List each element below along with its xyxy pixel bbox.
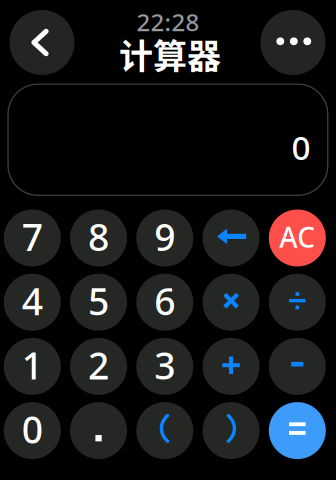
button[interactable]: Equals — [269, 402, 326, 459]
button[interactable]: Divide — [269, 274, 326, 331]
staticText: 5 — [88, 276, 109, 325]
button[interactable]: 9 — [136, 209, 193, 266]
button[interactable]: Right parenthesis — [203, 402, 260, 459]
button[interactable]: Back — [9, 10, 74, 75]
staticText: 2 — [88, 340, 109, 390]
staticText: 6 — [154, 276, 175, 325]
staticText: 22:28 — [136, 6, 199, 38]
staticText: 8 — [88, 212, 109, 261]
button[interactable]: 4 — [4, 274, 61, 331]
staticText: 0 — [22, 404, 43, 454]
button[interactable]: Minus — [269, 338, 326, 395]
button[interactable]: Plus — [203, 338, 260, 395]
button[interactable]: 3 — [136, 338, 193, 395]
button[interactable]: 2 — [70, 338, 127, 395]
button[interactable]: 7 — [4, 209, 61, 266]
staticText: AC — [279, 218, 315, 255]
button[interactable]: Multiply — [203, 274, 260, 331]
staticText: 4 — [22, 276, 43, 325]
button[interactable]: Delete — [203, 209, 260, 266]
button[interactable]: Left parenthesis — [136, 402, 193, 459]
staticText: 1 — [22, 340, 43, 390]
button[interactable]: 1 — [4, 338, 61, 395]
staticText: 3 — [154, 340, 175, 390]
staticText: 0 — [291, 125, 310, 169]
button[interactable]: 0 — [4, 402, 61, 459]
button[interactable]: AC — [269, 209, 326, 266]
button[interactable]: Decimal point — [70, 402, 127, 459]
button[interactable]: 6 — [136, 274, 193, 331]
staticText: 计算器 — [119, 29, 221, 79]
staticText: 9 — [154, 212, 175, 261]
button[interactable]: More — [260, 10, 325, 75]
button[interactable]: 8 — [70, 209, 127, 266]
staticText: 7 — [22, 212, 43, 261]
button[interactable]: 5 — [70, 274, 127, 331]
